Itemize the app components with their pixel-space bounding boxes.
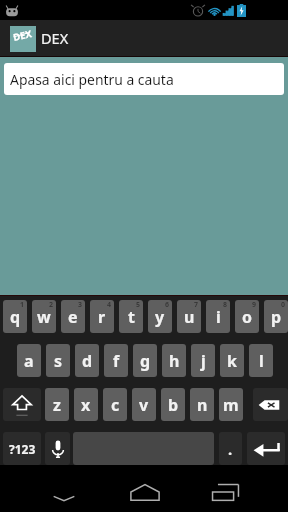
staticText: 6 xyxy=(165,300,170,310)
button[interactable]: . xyxy=(219,432,242,465)
staticText: y xyxy=(155,306,165,328)
staticText: 9 xyxy=(252,300,257,310)
staticText: m xyxy=(223,394,239,416)
staticText: 0 xyxy=(281,300,286,310)
button[interactable]: t xyxy=(119,300,143,333)
button[interactable]: e xyxy=(61,300,85,333)
staticText: e xyxy=(68,306,78,328)
button[interactable]: a xyxy=(17,344,41,377)
button[interactable]: x xyxy=(74,388,98,421)
staticText: . xyxy=(228,439,233,459)
staticText: b xyxy=(168,394,179,416)
staticText: 4 xyxy=(107,300,112,310)
staticText: 7 xyxy=(194,300,199,310)
button[interactable]: y xyxy=(148,300,172,333)
button[interactable]: b xyxy=(161,388,185,421)
staticText: 1 xyxy=(20,300,25,310)
staticText: j xyxy=(201,350,206,372)
button[interactable]: s xyxy=(46,344,70,377)
button[interactable]: Shift xyxy=(3,388,41,421)
button[interactable]: k xyxy=(220,344,244,377)
staticText: d xyxy=(82,350,93,372)
button[interactable]: v xyxy=(132,388,156,421)
button[interactable]: u xyxy=(177,300,201,333)
staticText: n xyxy=(197,394,208,416)
staticText: l xyxy=(259,350,264,372)
staticText: z xyxy=(53,394,61,416)
button[interactable]: j xyxy=(191,344,215,377)
button[interactable]: Enter xyxy=(247,432,285,465)
staticText: i xyxy=(216,306,221,328)
staticText: 2 xyxy=(49,300,54,310)
button[interactable]: Voice input xyxy=(45,432,70,465)
staticText: t xyxy=(128,306,135,328)
staticText: p xyxy=(271,306,282,328)
button[interactable]: c xyxy=(103,388,127,421)
staticText: Apasa aici pentru a cauta xyxy=(10,70,174,89)
button[interactable]: r xyxy=(90,300,114,333)
staticText: g xyxy=(140,350,151,372)
staticText: s xyxy=(54,350,63,372)
button[interactable]: d xyxy=(75,344,99,377)
button[interactable]: m xyxy=(219,388,243,421)
button[interactable]: q xyxy=(3,300,27,333)
staticText: DEX xyxy=(12,27,33,44)
button[interactable]: h xyxy=(162,344,186,377)
staticText: v xyxy=(139,394,149,416)
button[interactable]: i xyxy=(206,300,230,333)
button[interactable]: z xyxy=(45,388,69,421)
button[interactable]: w xyxy=(32,300,56,333)
staticText: c xyxy=(111,394,120,416)
staticText: q xyxy=(10,306,21,328)
staticText: k xyxy=(227,350,237,372)
button[interactable]: g xyxy=(133,344,157,377)
button[interactable]: f xyxy=(104,344,128,377)
button[interactable]: Backspace xyxy=(253,388,288,421)
button[interactable]: Apasa aici pentru a cauta xyxy=(4,63,284,95)
staticText: 5 xyxy=(136,300,141,310)
button[interactable]: o xyxy=(235,300,259,333)
staticText: h xyxy=(169,350,180,372)
button[interactable]: Home xyxy=(97,465,193,512)
staticText: r xyxy=(98,306,106,328)
button[interactable]: Recent apps xyxy=(177,465,273,512)
button[interactable]: n xyxy=(190,388,214,421)
button[interactable]: Hide keyboard xyxy=(16,465,112,512)
staticText: DEX xyxy=(41,28,69,48)
button[interactable]: l xyxy=(249,344,273,377)
staticText: x xyxy=(81,394,91,416)
staticText: a xyxy=(24,350,34,372)
button[interactable]: ?123 xyxy=(3,432,41,465)
staticText: 3 xyxy=(78,300,83,310)
staticText: u xyxy=(184,306,195,328)
staticText: ?123 xyxy=(9,441,36,457)
button[interactable]: p xyxy=(264,300,288,333)
staticText: 8 xyxy=(223,300,228,310)
staticText: f xyxy=(113,350,120,372)
staticText: w xyxy=(37,306,51,328)
staticText: o xyxy=(242,306,253,328)
